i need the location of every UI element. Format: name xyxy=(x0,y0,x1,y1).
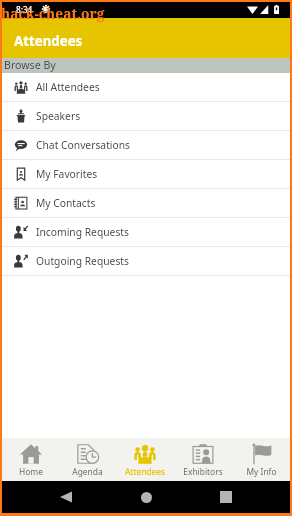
staticText: My Favorites xyxy=(36,167,98,181)
button[interactable]: Exhibitors xyxy=(174,443,232,477)
button[interactable]: Outgoing Requests xyxy=(2,247,290,276)
staticText: All Attendees xyxy=(36,80,100,94)
staticText: Outgoing Requests xyxy=(36,254,130,268)
staticText: Exhibitors xyxy=(183,466,223,477)
staticText: My Info xyxy=(246,466,277,477)
staticText: My Contacts xyxy=(36,196,96,210)
staticText: Chat Conversations xyxy=(36,138,131,152)
button[interactable]: Agenda xyxy=(59,443,116,477)
button[interactable]: My Info xyxy=(232,443,290,477)
button[interactable]: My Favorites xyxy=(2,160,290,189)
button[interactable]: Incoming Requests xyxy=(2,218,290,247)
button[interactable]: Chat Conversations xyxy=(2,131,290,160)
button[interactable]: Recents xyxy=(210,481,242,513)
staticText: Attendees xyxy=(14,32,83,50)
staticText: Agenda xyxy=(72,466,103,477)
staticText: Speakers xyxy=(36,109,81,123)
button[interactable]: My Contacts xyxy=(2,189,290,218)
button[interactable]: Back xyxy=(50,481,82,513)
button[interactable]: Speakers xyxy=(2,102,290,131)
staticText: 8:34 xyxy=(16,4,33,15)
staticText: Browse By xyxy=(4,58,56,72)
button[interactable]: Home xyxy=(130,481,162,513)
button[interactable]: All Attendees xyxy=(2,73,290,102)
staticText: Incoming Requests xyxy=(36,225,129,239)
staticText: hack-cheat.org xyxy=(1,4,105,23)
button[interactable]: Home xyxy=(2,443,59,477)
button[interactable]: Attendees xyxy=(116,443,174,477)
staticText: Attendees xyxy=(125,466,165,477)
staticText: Home xyxy=(19,466,43,477)
